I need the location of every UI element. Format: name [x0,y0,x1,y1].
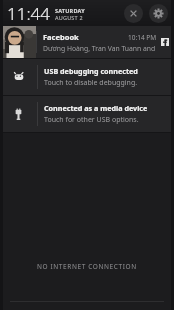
button[interactable]: Settings [149,4,168,23]
staticText: NO INTERNET CONNECTION [37,262,137,271]
staticText: 10:14 PM [128,33,157,42]
staticText: Touch to disable debugging. [44,78,138,88]
button[interactable]: USB debugging connected [0,59,174,95]
staticText: 11:44 [7,2,50,25]
button[interactable]: Clear all notifications [124,4,143,23]
button[interactable]: Facebook [0,26,174,58]
staticText: AUGUST 2 [55,14,83,21]
staticText: Touch for other USB options. [44,115,139,125]
staticText: USB debugging connected [44,66,138,76]
button[interactable]: Connected as a media device [0,96,174,132]
staticText: Facebook [43,32,79,42]
staticText: Connected as a media device [44,103,148,113]
staticText: SATURDAY [55,7,85,14]
staticText: Dương Hoàng, Tran Van Tuann and 2 oth [43,44,157,53]
